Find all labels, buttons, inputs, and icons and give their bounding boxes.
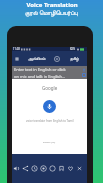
- staticText: Enter text in English or click on mic an…: [14, 67, 66, 79]
- button[interactable]: Translate: [81, 72, 86, 77]
- button[interactable]: Swap languages: [52, 54, 61, 63]
- button[interactable]: Copy: [30, 164, 39, 173]
- button[interactable]: Play audio: [12, 164, 21, 173]
- button[interactable]: ஆங்கிலம்: [21, 51, 52, 66]
- button[interactable]: Save: [57, 164, 66, 173]
- staticText: voice translate from English to Tamil: [26, 119, 74, 123]
- button[interactable]: WhatsApp: [39, 164, 48, 173]
- button[interactable]: Speak: [48, 164, 57, 173]
- button[interactable]: Favourite: [66, 164, 75, 173]
- staticText: Google: [42, 85, 58, 91]
- staticText: ஆங்கிலம்: [28, 57, 46, 61]
- staticText: தமிழ்: [70, 57, 79, 61]
- button[interactable]: Voice input: [81, 67, 86, 72]
- button[interactable]: தமிழ்: [61, 51, 87, 66]
- staticText: குரல் மொழிபெயர்ப்பு: [25, 9, 78, 17]
- button[interactable]: Menu: [12, 51, 21, 66]
- staticText: Voice Translation: [26, 1, 78, 9]
- staticText: 11:28: [13, 47, 20, 51]
- staticText: English (US): [43, 141, 56, 144]
- button[interactable]: Microphone: [43, 100, 56, 113]
- staticText: 82%: [70, 47, 76, 51]
- button[interactable]: Clear: [75, 164, 84, 173]
- button[interactable]: Share: [21, 164, 30, 173]
